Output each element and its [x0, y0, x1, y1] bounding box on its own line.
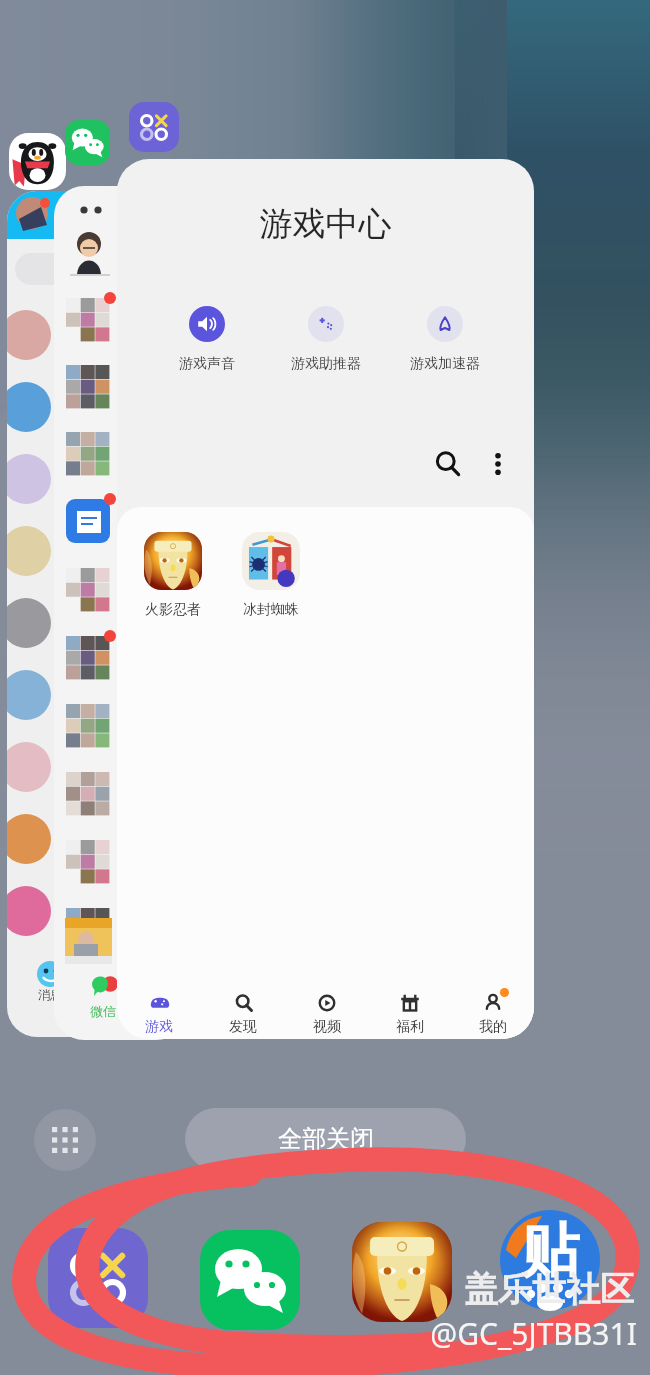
button[interactable]: WeChat [65, 120, 110, 165]
button[interactable]: Tieba [500, 1210, 600, 1310]
staticText: 游戏加速器 [410, 355, 480, 373]
button[interactable]: 游戏中心 [117, 159, 534, 1039]
button[interactable]: 发现 [201, 987, 285, 1039]
staticText: 游戏中心 [117, 203, 534, 245]
button[interactable]: 福利 [368, 987, 451, 1039]
button[interactable]: Game Launcher [129, 102, 179, 152]
button[interactable]: More options [475, 441, 521, 487]
staticText: 微信 [90, 1003, 116, 1019]
button[interactable]: 微信 [54, 186, 186, 1040]
button[interactable]: Game Launcher [48, 1228, 148, 1328]
button[interactable]: 我的 [451, 987, 534, 1039]
staticText: 冰封蜘蛛 [243, 601, 299, 619]
button[interactable]: Naruto [352, 1222, 452, 1322]
staticText: 发现 [229, 1018, 257, 1036]
button[interactable]: 游戏 [117, 987, 201, 1039]
staticText: 贴 [521, 1214, 579, 1287]
staticText: 火影忍者 [145, 601, 201, 619]
staticText: 视频 [313, 1018, 341, 1036]
button[interactable]: 游戏声音 [147, 306, 266, 373]
staticText: @GC_5JTBB31I [430, 1313, 637, 1354]
staticText: 我的 [479, 1018, 507, 1036]
staticText: 游戏 [145, 1018, 173, 1036]
staticText: 福利 [396, 1018, 424, 1036]
staticText: 全部关闭 [278, 1124, 374, 1154]
button[interactable]: 游戏助推器 [266, 306, 385, 373]
staticText: 游戏助推器 [291, 355, 361, 373]
button[interactable]: App drawer [34, 1109, 96, 1171]
button[interactable]: 冰封蜘蛛 [242, 532, 300, 619]
button[interactable]: WeChat [200, 1230, 300, 1330]
button[interactable]: 火影忍者 [144, 532, 202, 619]
staticText: 盖乐世社区 [464, 1268, 634, 1311]
button[interactable]: Search [425, 441, 471, 487]
staticText: 消息 [38, 987, 62, 1002]
button[interactable]: 游戏加速器 [385, 306, 504, 373]
button[interactable]: 视频 [285, 987, 368, 1039]
button[interactable]: 消息 [7, 191, 125, 1037]
staticText: 游戏声音 [179, 355, 235, 373]
button[interactable]: 全部关闭 [185, 1108, 466, 1170]
button[interactable]: QQ [9, 133, 66, 190]
